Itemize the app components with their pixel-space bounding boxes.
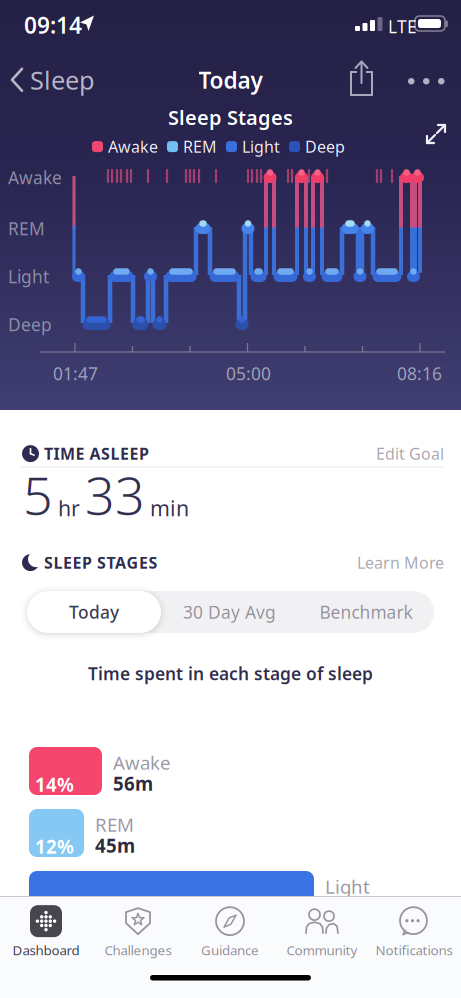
- staticText: Deep: [305, 136, 345, 157]
- button[interactable]: Learn More: [357, 552, 444, 573]
- staticText: Notifications: [375, 941, 452, 959]
- button[interactable]: [425, 123, 447, 145]
- staticText: Awake: [8, 166, 62, 189]
- staticText: hr: [58, 494, 80, 522]
- button[interactable]: Notifications: [368, 900, 460, 964]
- staticText: Awake: [113, 750, 171, 775]
- staticText: Sleep: [30, 63, 95, 97]
- button[interactable]: Community: [276, 900, 368, 964]
- staticText: REM: [8, 217, 45, 240]
- staticText: Light: [325, 874, 370, 899]
- staticText: 45m: [95, 833, 135, 858]
- staticText: Community: [286, 941, 357, 959]
- staticText: 09:14: [24, 10, 82, 40]
- staticText: 08:16: [397, 362, 442, 385]
- staticText: Challenges: [104, 941, 171, 959]
- staticText: Sleep Stages: [168, 104, 293, 131]
- staticText: Edit Goal: [376, 443, 444, 464]
- staticText: Learn More: [357, 552, 444, 573]
- staticText: Guidance: [201, 941, 259, 959]
- button[interactable]: Dashboard: [0, 900, 92, 964]
- button[interactable]: Sleep: [12, 63, 95, 97]
- staticText: 3h 8m: [325, 895, 382, 920]
- button[interactable]: Benchmark: [298, 591, 434, 633]
- staticText: Deep: [8, 313, 52, 336]
- staticText: 57%: [35, 896, 74, 921]
- button[interactable]: Today: [27, 591, 161, 633]
- staticText: REM: [183, 136, 217, 157]
- button[interactable]: 30 Day Avg: [161, 591, 298, 633]
- button[interactable]: [351, 61, 372, 95]
- staticText: Light: [8, 265, 49, 288]
- staticText: Today: [69, 600, 119, 623]
- staticText: 14%: [35, 772, 74, 797]
- staticText: Today: [198, 65, 262, 95]
- staticText: LTE: [388, 15, 417, 38]
- staticText: 01:47: [53, 362, 98, 385]
- staticText: Benchmark: [319, 600, 412, 623]
- staticText: TIME ASLEEP: [44, 443, 149, 464]
- staticText: Light: [242, 136, 280, 157]
- staticText: SLEEP STAGES: [44, 552, 157, 573]
- staticText: Time spent in each stage of sleep: [88, 662, 373, 685]
- staticText: 33: [85, 460, 145, 529]
- staticText: 05:00: [226, 362, 271, 385]
- button[interactable]: Edit Goal: [376, 443, 444, 464]
- staticText: 12%: [35, 834, 74, 859]
- staticText: Dashboard: [12, 941, 79, 959]
- button[interactable]: Challenges: [92, 900, 184, 964]
- staticText: REM: [95, 812, 134, 837]
- staticText: 5: [23, 460, 53, 529]
- button[interactable]: [408, 78, 444, 84]
- staticText: 30 Day Avg: [183, 600, 276, 623]
- staticText: Awake: [108, 136, 158, 157]
- staticText: min: [150, 494, 189, 522]
- staticText: 56m: [113, 771, 153, 796]
- button[interactable]: Guidance: [184, 900, 276, 964]
